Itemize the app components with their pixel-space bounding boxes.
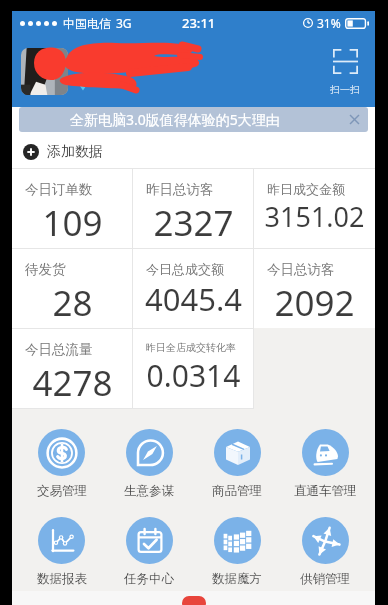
button[interactable]: 头像 [21,48,68,95]
button[interactable]: 今日总流量 [12,329,133,408]
button[interactable]: 今日订单数 [12,169,133,248]
staticText: 31% [317,15,341,31]
button[interactable]: 待发货 [12,249,133,328]
staticText: 昨日成交金额 [267,181,345,197]
staticText: 商品管理 [212,483,262,497]
staticText: 28 [20,279,125,327]
staticText: 供销管理 [300,571,350,585]
button[interactable]: 扫一扫 [320,35,370,107]
button[interactable]: 直通车管理 [281,409,369,497]
staticText: 待发货 [25,261,66,278]
staticText: 今日总成交额 [146,261,224,277]
button[interactable]: 全新电脑3.0版值得体验的5大理由 [19,107,368,132]
button[interactable]: 添加数据 [12,132,375,168]
button[interactable]: 今日总访客 [254,249,375,328]
staticText: 数据魔方 [212,571,262,585]
staticText: 交易管理 [37,483,87,497]
staticText: 23:11 [182,14,216,32]
staticText: 今日总流量 [25,341,93,358]
staticText: 中国电信 [63,16,111,31]
staticText: 生意参谋 [124,483,174,497]
button[interactable]: 今日总成交额 [133,249,254,328]
staticText: 2327 [141,199,246,247]
staticText: 今日总访客 [267,261,335,278]
staticText: 昨日总访客 [146,181,214,198]
staticText: 任务中心 [124,571,174,585]
button[interactable]: 数据报表 [18,497,105,585]
staticText: 4278 [20,359,125,407]
staticText: 109 [20,199,125,247]
button[interactable]: 昨日总访客 [133,169,254,248]
staticText: 添加数据 [47,143,103,161]
button[interactable]: 供销管理 [281,497,369,585]
staticText: 3G [116,15,132,31]
staticText: 全新电脑3.0版值得体验的5大理由 [70,110,280,129]
button[interactable]: 任务中心 [105,497,193,585]
other: 关闭 [350,115,359,124]
staticText: 3151.02 [262,198,367,235]
staticText: 数据报表 [37,571,87,585]
staticText: 2092 [262,279,367,327]
button[interactable]: 商品管理 [193,409,281,497]
staticText: 0.0314 [141,355,246,396]
staticText: 今日订单数 [25,181,93,198]
button[interactable]: 数据魔方 [193,497,281,585]
staticText: 4045.4 [141,278,246,320]
button[interactable]: 交易管理 [18,409,105,497]
staticText: 昨日全店成交转化率 [146,341,236,354]
staticText: 扫一扫 [330,83,360,96]
button[interactable]: 昨日成交金额 [254,169,375,248]
staticText: 直通车管理 [294,483,357,497]
button[interactable]: 昨日全店成交转化率 [133,329,254,408]
button[interactable]: 生意参谋 [105,409,193,497]
